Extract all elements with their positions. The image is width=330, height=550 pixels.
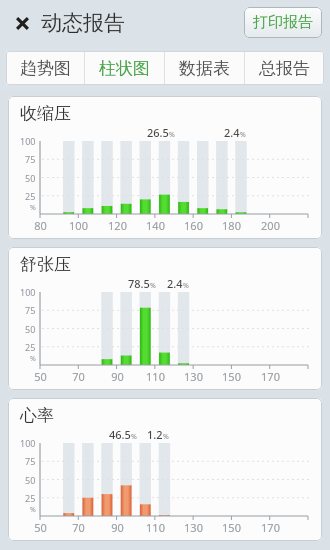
staticText: 2.4 <box>224 125 240 140</box>
staticText: 70 <box>72 520 85 535</box>
button[interactable]: 打印报告 <box>244 7 322 38</box>
staticText: 200 <box>261 218 280 233</box>
staticText: 100 <box>20 437 36 449</box>
staticText: 160 <box>184 218 203 233</box>
staticText: 100 <box>69 218 88 233</box>
staticText: % <box>131 432 137 442</box>
staticText: 26.5 <box>147 125 169 140</box>
staticText: % <box>30 354 36 364</box>
staticText: 100 <box>20 135 36 147</box>
staticText: 50 <box>25 323 36 335</box>
staticText: 50 <box>34 369 47 384</box>
staticText: % <box>30 203 36 213</box>
staticText: 动态报告 <box>41 10 125 36</box>
button[interactable]: 趋势图 <box>6 51 84 85</box>
button[interactable]: 总报告 <box>245 51 324 85</box>
staticText: 2.4 <box>167 276 183 291</box>
staticText: 110 <box>146 520 165 535</box>
staticText: % <box>183 281 189 291</box>
staticText: 120 <box>108 218 127 233</box>
staticText: 150 <box>222 520 241 535</box>
button[interactable]: 心率 <box>8 398 322 541</box>
staticText: 100 <box>20 286 36 298</box>
staticText: 180 <box>222 218 241 233</box>
button[interactable]: 收缩压 <box>8 96 322 239</box>
staticText: 50 <box>34 520 47 535</box>
staticText: % <box>240 130 246 140</box>
staticText: 数据表 <box>179 58 230 79</box>
staticText: 收缩压 <box>20 103 71 124</box>
staticText: 90 <box>111 369 124 384</box>
staticText: 170 <box>261 369 280 384</box>
button[interactable]: Close <box>8 7 36 39</box>
staticText: 130 <box>184 369 203 384</box>
staticText: 90 <box>111 520 124 535</box>
staticText: 总报告 <box>259 58 310 79</box>
staticText: 75 <box>25 304 36 316</box>
staticText: 170 <box>261 520 280 535</box>
staticText: % <box>163 432 169 442</box>
staticText: 50 <box>25 474 36 486</box>
staticText: % <box>30 505 36 515</box>
staticText: 78.5 <box>128 276 150 291</box>
staticText: % <box>169 130 175 140</box>
staticText: 110 <box>146 369 165 384</box>
staticText: 舒张压 <box>20 254 71 275</box>
staticText: 130 <box>184 520 203 535</box>
staticText: 心率 <box>20 405 54 426</box>
staticText: 50 <box>25 172 36 184</box>
staticText: 75 <box>25 455 36 467</box>
staticText: 打印报告 <box>253 13 313 32</box>
staticText: 75 <box>25 153 36 165</box>
staticText: 70 <box>72 369 85 384</box>
button[interactable]: 柱状图 <box>85 51 164 85</box>
staticText: % <box>150 281 156 291</box>
staticText: 25 <box>25 190 36 202</box>
staticText: 柱状图 <box>99 58 150 79</box>
staticText: 趋势图 <box>20 58 71 79</box>
staticText: 140 <box>146 218 165 233</box>
staticText: 25 <box>25 341 36 353</box>
staticText: 150 <box>222 369 241 384</box>
staticText: 80 <box>34 218 47 233</box>
staticText: 25 <box>25 492 36 504</box>
button[interactable]: 舒张压 <box>8 247 322 390</box>
staticText: 1.2 <box>147 427 163 442</box>
staticText: 46.5 <box>109 427 131 442</box>
button[interactable]: 数据表 <box>165 51 244 85</box>
